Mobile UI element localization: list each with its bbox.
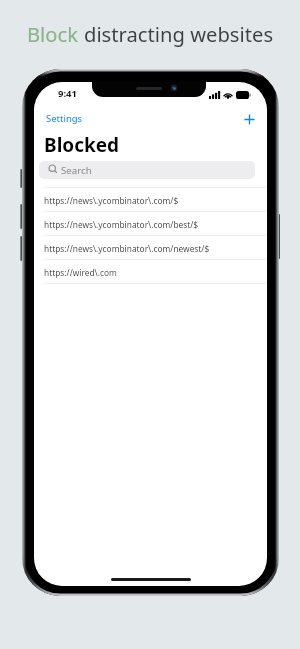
- staticText: 9:41: [58, 87, 77, 100]
- staticText: https://news\.ycombinator\.com/newest/$: [44, 243, 210, 254]
- button[interactable]: Search: [39, 161, 255, 179]
- button[interactable]: Add website: [242, 112, 257, 127]
- staticText: Block: [27, 20, 84, 48]
- button[interactable]: https://news\.ycombinator\.com/newest/$: [34, 236, 267, 260]
- staticText: Blocked: [44, 132, 120, 158]
- button[interactable]: Settings: [45, 111, 84, 126]
- staticText: Search: [61, 164, 92, 177]
- staticText: distracting websites: [84, 20, 274, 48]
- button[interactable]: https://wired\.com: [34, 260, 267, 284]
- button[interactable]: https://news\.ycombinator\.com/best/$: [34, 212, 267, 236]
- staticText: https://wired\.com: [44, 267, 117, 278]
- button[interactable]: https://news\.ycombinator\.com/$: [34, 188, 267, 212]
- staticText: https://news\.ycombinator\.com/best/$: [44, 219, 199, 230]
- staticText: https://news\.ycombinator\.com/$: [44, 195, 179, 206]
